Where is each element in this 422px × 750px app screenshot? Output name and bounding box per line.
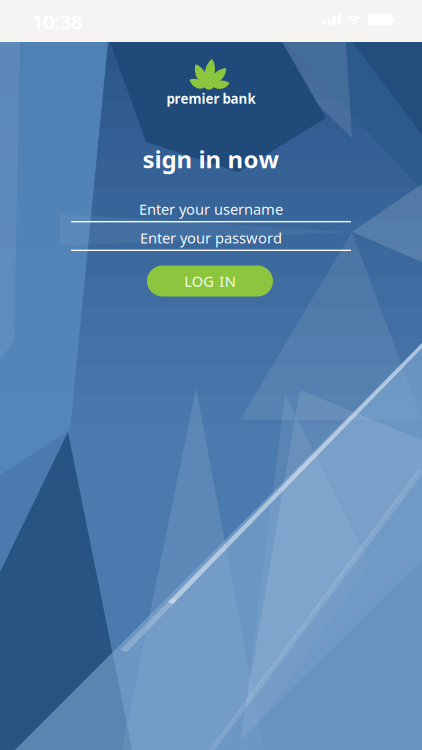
staticText: premier bank	[166, 90, 255, 107]
staticText: Enter your username	[139, 199, 283, 219]
staticText: Enter your password	[140, 228, 282, 247]
staticText: sign in now	[142, 143, 279, 175]
staticText: LOG IN	[184, 271, 236, 291]
button[interactable]: Enter your password	[71, 226, 351, 251]
button[interactable]: LOG IN	[147, 265, 273, 296]
button[interactable]: Enter your username	[71, 197, 351, 222]
staticText: 10:38	[32, 8, 82, 35]
